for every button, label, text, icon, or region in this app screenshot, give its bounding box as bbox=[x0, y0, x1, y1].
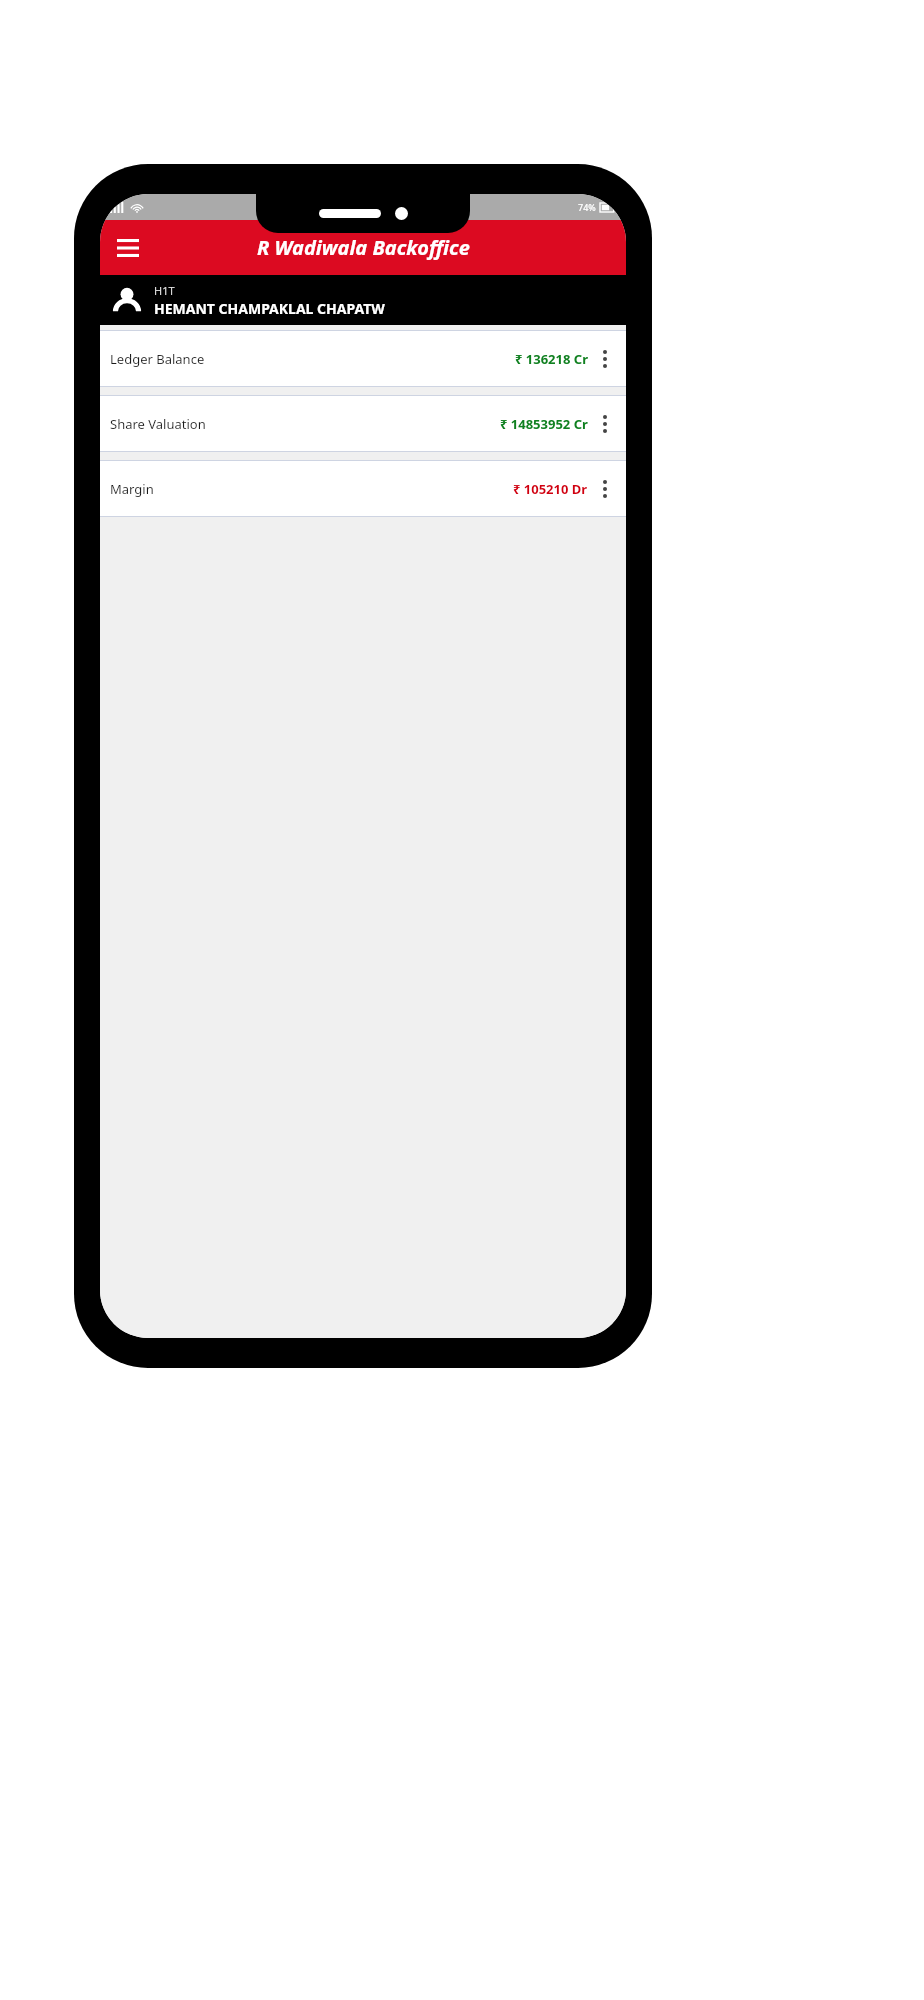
staticText: ₹ 136218 Cr bbox=[515, 350, 588, 368]
staticText: R Wadiwala Backoffice bbox=[257, 234, 470, 261]
staticText: H1T bbox=[154, 283, 175, 298]
staticText: 74% bbox=[578, 201, 596, 213]
staticText: ₹ 14853952 Cr bbox=[500, 415, 588, 433]
staticText: Share Valuation bbox=[110, 415, 206, 433]
staticText: HEMANT CHAMPAKLAL CHAPATW bbox=[154, 299, 385, 318]
staticText: ₹ 105210 Dr bbox=[513, 480, 588, 498]
button[interactable]: More options for Ledger Balance bbox=[588, 337, 622, 381]
staticText: Ledger Balance bbox=[110, 350, 205, 368]
staticText: Margin bbox=[110, 480, 154, 498]
button[interactable]: Margin bbox=[100, 461, 626, 516]
button[interactable]: Ledger Balance bbox=[100, 331, 626, 386]
button[interactable]: H1T bbox=[100, 275, 626, 325]
button[interactable]: Open navigation menu bbox=[108, 228, 148, 268]
button[interactable]: Share Valuation bbox=[100, 396, 626, 451]
button[interactable]: More options for Margin bbox=[588, 467, 622, 511]
button[interactable]: More options for Share Valuation bbox=[588, 402, 622, 446]
